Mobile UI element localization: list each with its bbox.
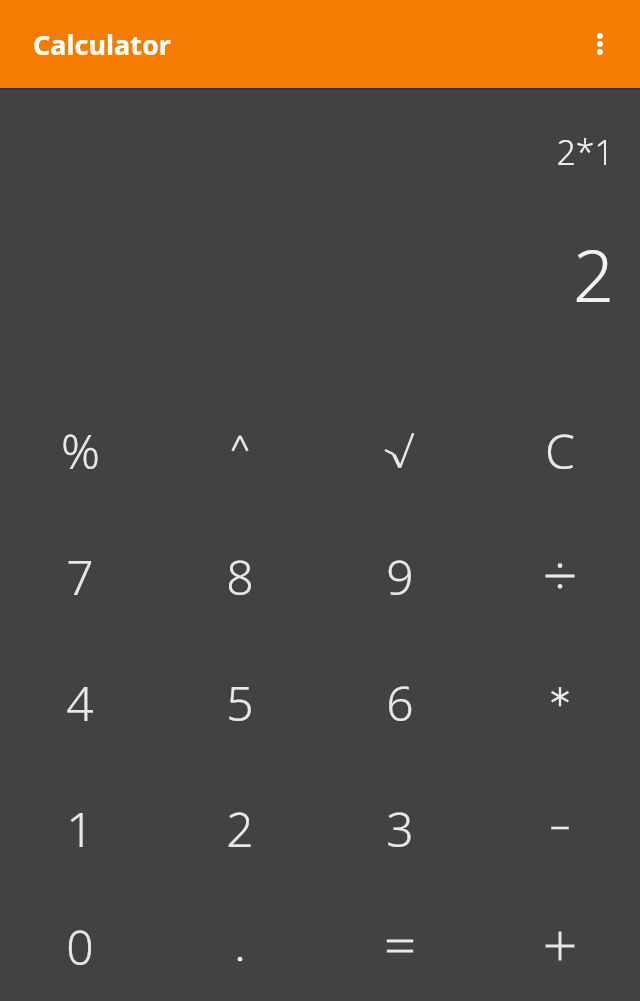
staticText: 3	[386, 796, 414, 861]
button[interactable]: 4	[0, 639, 160, 765]
button[interactable]: 9	[320, 513, 480, 639]
staticText: 7	[66, 544, 94, 609]
button[interactable]	[160, 891, 320, 1001]
staticText: 2	[226, 796, 254, 861]
button[interactable]: 0	[0, 891, 160, 1001]
button[interactable]	[480, 639, 640, 765]
button[interactable]: C	[480, 387, 640, 513]
staticText: 4	[66, 670, 94, 735]
staticText: 5	[226, 670, 254, 735]
staticText: 6	[386, 670, 414, 735]
button[interactable]: 2	[160, 765, 320, 891]
button[interactable]: More options	[572, 16, 628, 72]
staticText: %	[61, 418, 100, 483]
button[interactable]: 6	[320, 639, 480, 765]
staticText: 9	[386, 544, 414, 609]
staticText: 2*1	[556, 129, 614, 175]
staticText: 0	[66, 914, 94, 979]
staticText: 2	[572, 225, 614, 323]
staticText: C	[545, 418, 575, 483]
button[interactable]: 7	[0, 513, 160, 639]
staticText: Calculator	[33, 26, 171, 63]
button[interactable]: 1	[0, 765, 160, 891]
button[interactable]	[160, 387, 320, 513]
button[interactable]: 3	[320, 765, 480, 891]
button[interactable]	[320, 891, 480, 1001]
button[interactable]: %	[0, 387, 160, 513]
button[interactable]	[320, 387, 480, 513]
button[interactable]	[480, 891, 640, 1001]
staticText: 8	[226, 544, 254, 609]
button[interactable]	[480, 513, 640, 639]
button[interactable]: 5	[160, 639, 320, 765]
button[interactable]	[480, 765, 640, 891]
button[interactable]: 8	[160, 513, 320, 639]
staticText: 1	[66, 796, 94, 861]
